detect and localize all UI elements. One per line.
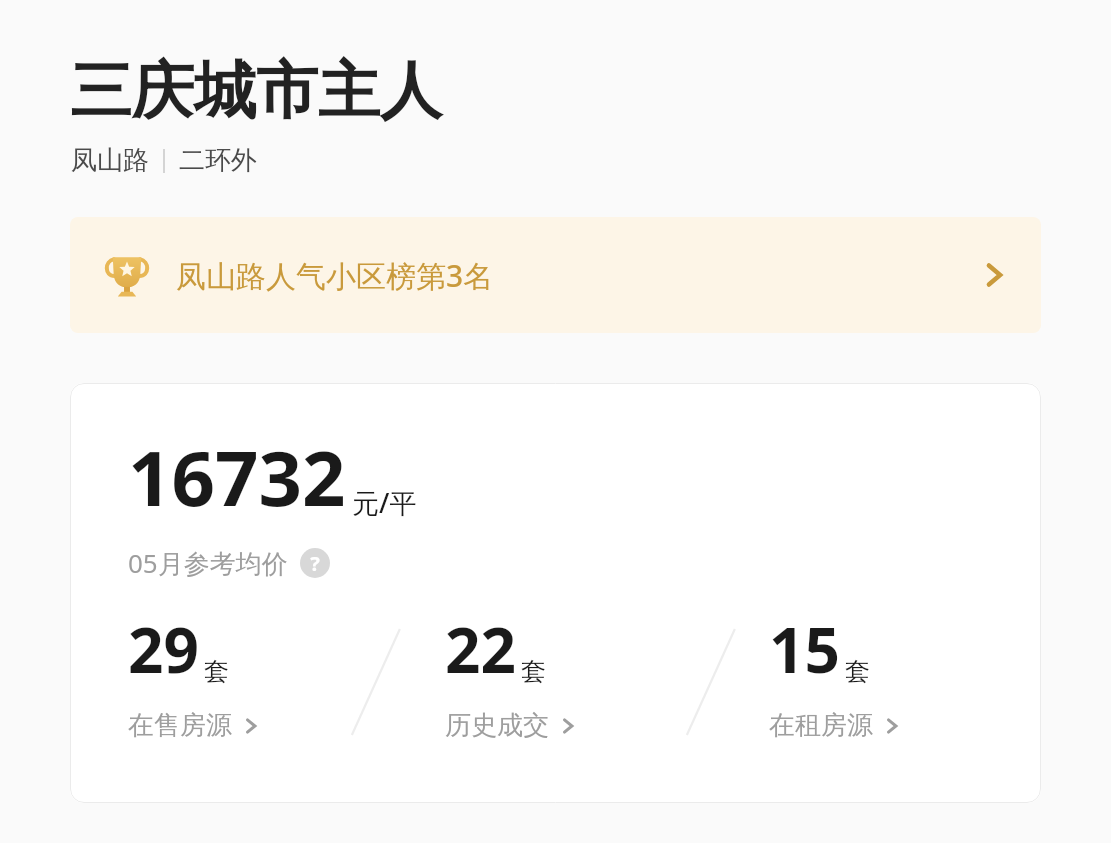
staticText: 15 (769, 607, 840, 691)
staticText: 套 (845, 656, 870, 687)
staticText: 16732 (128, 425, 346, 529)
staticText: 套 (521, 656, 546, 687)
staticText: 二环外 (179, 144, 257, 177)
button[interactable]: 22 (393, 607, 717, 767)
button[interactable]: 凤山路人气小区榜第3名 (70, 217, 1041, 333)
staticText: 凤山路人气小区榜第3名 (176, 255, 494, 296)
staticText: 22 (445, 607, 516, 691)
staticText: 套 (204, 656, 229, 687)
staticText: 三庆城市主人 (70, 52, 442, 130)
button[interactable]: 15 (717, 607, 1041, 767)
staticText: 29 (128, 607, 199, 691)
other: 查看排行榜 (977, 258, 1011, 292)
staticText: 历史成交 (445, 709, 549, 742)
staticText: 元/平 (352, 484, 417, 521)
staticText: 在租房源 (769, 709, 873, 742)
button[interactable]: 05月参考均价 (128, 545, 330, 581)
staticText: 凤山路 (71, 144, 149, 177)
staticText: 05月参考均价 (128, 545, 288, 581)
staticText: 在售房源 (128, 709, 232, 742)
other: 价格说明 (300, 548, 330, 578)
staticText: ? (310, 550, 320, 577)
button[interactable]: 29 (70, 607, 393, 767)
